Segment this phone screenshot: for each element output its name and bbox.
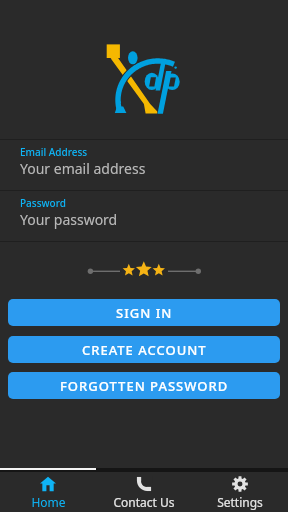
button[interactable]: Settings (192, 472, 288, 510)
staticText: Email Address (20, 145, 88, 159)
button[interactable]: Email Address (0, 140, 288, 190)
staticText: Password (20, 196, 66, 210)
button[interactable]: FORGOTTEN PASSWORD (8, 372, 280, 399)
button[interactable]: Home (0, 472, 96, 510)
staticText: Contact Us (113, 494, 175, 510)
staticText: FORGOTTEN PASSWORD (60, 377, 229, 395)
staticText: SIGN IN (116, 304, 173, 322)
button[interactable]: CREATE ACCOUNT (8, 336, 280, 363)
staticText: CREATE ACCOUNT (82, 341, 207, 359)
button[interactable]: SIGN IN (8, 299, 280, 326)
button[interactable]: Password (0, 191, 288, 241)
staticText: Settings (217, 494, 263, 510)
staticText: Your password (20, 210, 118, 229)
button[interactable]: Contact Us (96, 472, 192, 510)
staticText: Your email address (20, 159, 146, 178)
staticText: Home (31, 494, 66, 510)
